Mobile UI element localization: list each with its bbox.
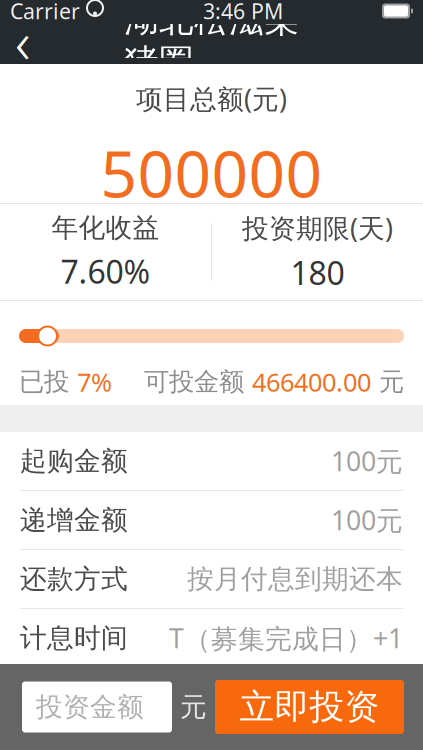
staticText: 元 <box>371 366 404 397</box>
button[interactable]: 投资金额输入框 <box>22 681 172 732</box>
staticText: 年化收益 <box>51 211 159 244</box>
staticText: 7.60% <box>60 250 150 293</box>
staticText: 立即投资 <box>239 686 379 728</box>
staticText: 466400.00 <box>252 365 371 399</box>
staticText: 7% <box>77 365 112 399</box>
staticText: 按月付息到期还本 <box>187 563 403 595</box>
staticText: 100元 <box>331 443 403 479</box>
staticText: 100元 <box>331 502 403 538</box>
staticText: 500000 <box>100 130 322 215</box>
staticText: 递增金额 <box>20 504 128 536</box>
staticText: 元 <box>180 691 207 723</box>
button[interactable]: Back <box>0 22 46 60</box>
staticText: 投资金额 <box>36 691 144 723</box>
staticText: 湖北松滋某猪圈 <box>124 0 299 84</box>
staticText: 投资期限(天) <box>242 210 393 245</box>
staticText: T（募集完成日）+1 <box>169 620 403 656</box>
staticText: 可投金额 <box>144 366 252 397</box>
staticText: 180 <box>290 251 344 294</box>
staticText: 3:46 PM <box>203 0 283 25</box>
staticText: ‹ <box>15 2 31 80</box>
staticText: 计息时间 <box>20 622 128 654</box>
staticText: 项目总额(元) <box>136 81 287 116</box>
staticText: 起购金额 <box>20 445 128 477</box>
button[interactable]: 立即投资 <box>215 680 404 734</box>
staticText: Carrier <box>10 0 80 25</box>
staticText: 已投 <box>19 366 77 397</box>
staticText: 还款方式 <box>20 563 128 595</box>
